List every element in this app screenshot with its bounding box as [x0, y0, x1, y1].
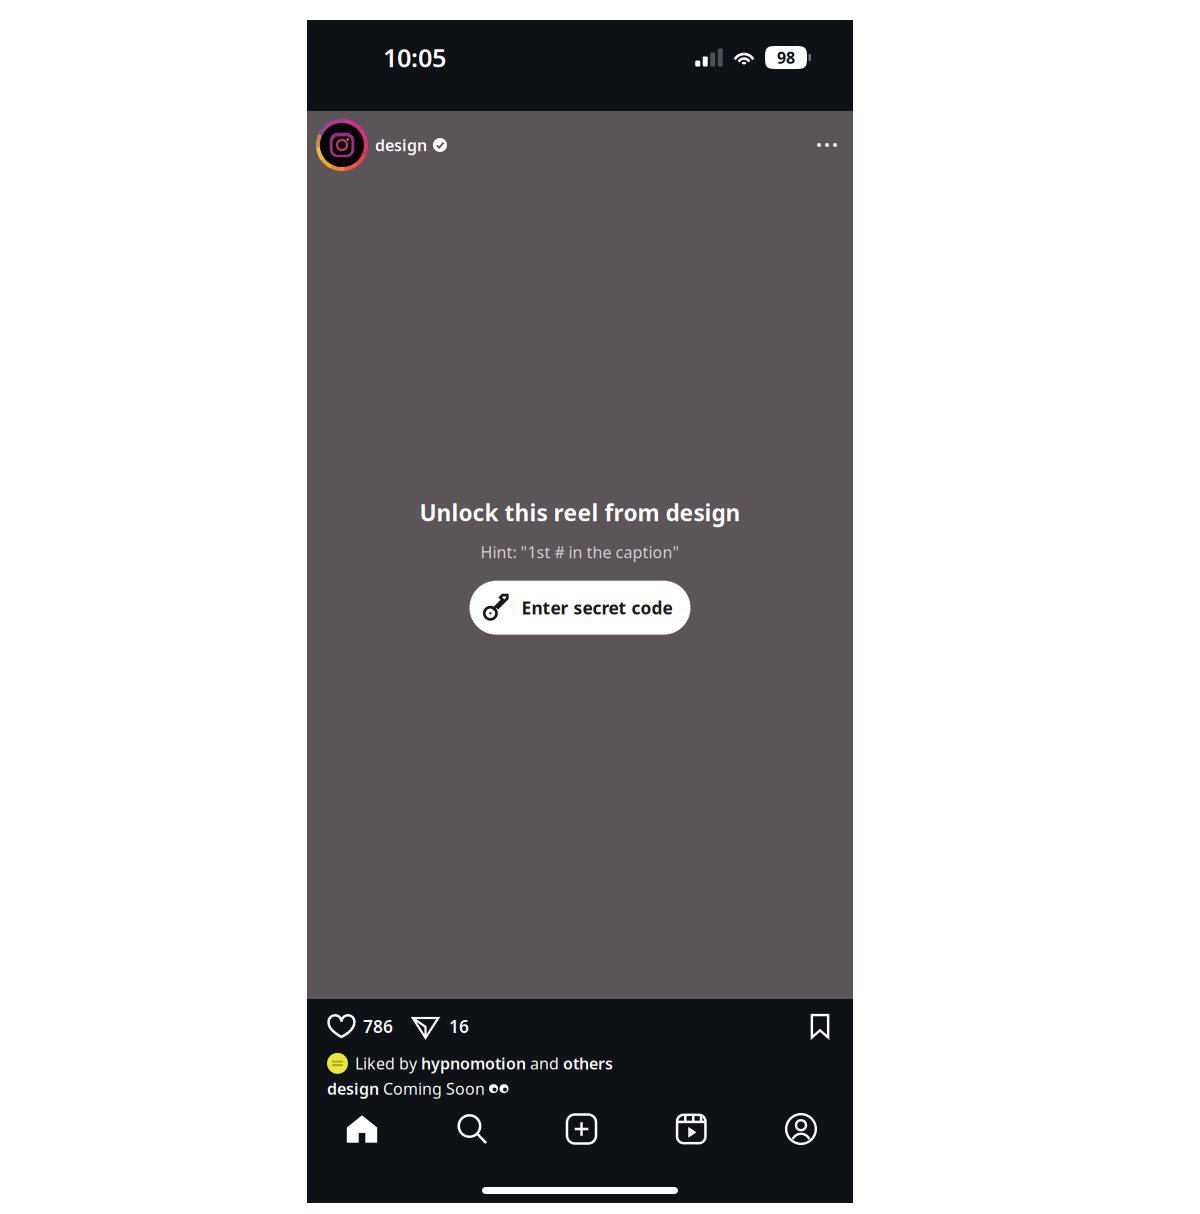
button[interactable]: Home: [320, 1101, 404, 1157]
staticText: 98: [777, 47, 795, 68]
button[interactable]: Save: [806, 1012, 834, 1040]
staticText: 786: [363, 1015, 393, 1038]
staticText: Unlock this reel from design: [419, 497, 740, 527]
button[interactable]: 16: [411, 1012, 469, 1041]
button[interactable]: Profile: [759, 1101, 843, 1157]
button[interactable]: design: [316, 119, 447, 171]
button[interactable]: Enter secret code: [469, 581, 690, 635]
button[interactable]: More options: [809, 128, 845, 162]
staticText: design: [375, 134, 427, 156]
button[interactable]: Reels: [649, 1101, 733, 1157]
staticText: and: [526, 1053, 563, 1074]
staticText: 16: [449, 1015, 469, 1038]
staticText: hypnomotion: [421, 1053, 526, 1074]
staticText: design: [327, 1078, 379, 1099]
staticText: Coming Soon: [379, 1078, 489, 1099]
staticText: Enter secret code: [521, 596, 672, 619]
staticText: 10:05: [383, 41, 446, 74]
button[interactable]: Create: [539, 1101, 623, 1157]
button[interactable]: 786: [327, 1012, 393, 1041]
staticText: others: [563, 1053, 613, 1074]
button[interactable]: Search: [430, 1101, 514, 1157]
staticText: Hint: "1st # in the caption": [480, 541, 679, 563]
staticText: Liked by: [355, 1053, 421, 1074]
